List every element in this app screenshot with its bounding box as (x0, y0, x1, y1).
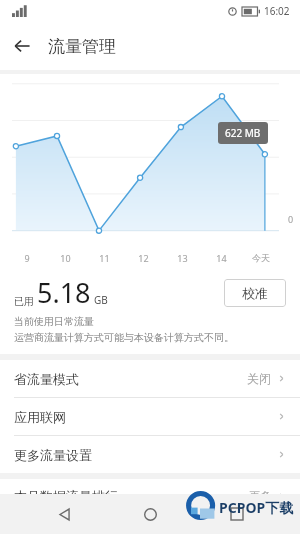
staticText: 5.18 (37, 274, 91, 311)
staticText: 13 (177, 252, 188, 264)
button[interactable]: Home (127, 494, 173, 534)
button[interactable]: Back (0, 24, 44, 68)
staticText: 更多 (249, 489, 271, 503)
staticText: 本月数据流量排行 (14, 488, 118, 504)
staticText: 当前使用日常流量 (14, 315, 94, 328)
staticText: 省流量模式 (14, 371, 79, 387)
staticText: 今天 (252, 252, 270, 263)
staticText: 16:02 (264, 4, 290, 18)
staticText: 14 (216, 252, 227, 264)
button[interactable]: 本月数据流量排行 (0, 479, 300, 513)
staticText: 流量管理 (48, 36, 116, 57)
staticText: 0 (288, 213, 294, 225)
staticText: 校准 (242, 285, 268, 301)
staticText: 11 (99, 252, 110, 264)
button[interactable]: Recents (214, 494, 260, 534)
staticText: 已用 (14, 295, 34, 308)
staticText: 622 MB (225, 126, 261, 140)
button[interactable]: 应用联网 (0, 398, 300, 436)
button[interactable]: 更多流量设置 (0, 436, 300, 473)
staticText: 12 (138, 252, 149, 264)
staticText: 关闭 (247, 371, 271, 386)
button[interactable]: Back (41, 494, 87, 534)
button[interactable]: 省流量模式 (0, 360, 300, 398)
staticText: 更多流量设置 (14, 447, 92, 463)
staticText: 运营商流量计算方式可能与本设备计算方式不同。 (14, 331, 234, 344)
staticText: GB (94, 293, 108, 307)
staticText: 9 (24, 252, 30, 264)
button[interactable]: 校准 (224, 279, 286, 307)
staticText: 10 (60, 252, 71, 264)
staticText: 应用联网 (14, 409, 66, 425)
staticText: PCPOP下载 (219, 498, 294, 517)
